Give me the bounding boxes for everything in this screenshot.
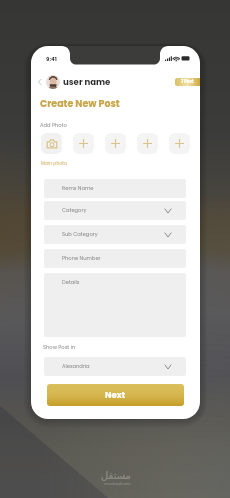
staticText: 7 Post <box>181 79 194 85</box>
button[interactable]: Add photo <box>105 133 126 154</box>
staticText: Items Name <box>62 185 94 192</box>
staticText: Details <box>62 279 80 286</box>
staticText: Category <box>62 207 87 214</box>
staticText: Main photo <box>41 160 67 166</box>
staticText: Sub Category <box>62 231 98 238</box>
staticText: 9:41 <box>46 55 57 63</box>
staticText: Phone Number <box>62 255 101 262</box>
button[interactable]: Alexandria <box>44 357 186 376</box>
button[interactable]: Add photo <box>137 133 158 154</box>
staticText: Add Photo <box>40 122 67 129</box>
button[interactable]: Items Name <box>44 179 186 198</box>
staticText: Create New Post <box>40 97 120 110</box>
button[interactable]: Next <box>47 384 184 406</box>
button[interactable]: Main photo <box>41 133 62 154</box>
staticText: Next <box>105 389 126 401</box>
button[interactable]: Add photo <box>169 133 190 154</box>
button[interactable]: Category <box>44 201 186 220</box>
button[interactable]: Phone Number <box>44 249 186 268</box>
staticText: user name <box>63 76 111 88</box>
staticText: مستقل <box>101 470 131 482</box>
staticText: Alexandria <box>62 363 90 370</box>
button[interactable]: Details <box>44 273 186 337</box>
button[interactable]: 7 Post <box>175 78 200 86</box>
button[interactable]: Add photo <box>73 133 94 154</box>
button[interactable]: Sub Category <box>44 225 186 244</box>
staticText: Show Post in <box>43 344 76 351</box>
staticText: mostaql.com <box>104 481 131 487</box>
button[interactable]: Back <box>35 77 45 87</box>
